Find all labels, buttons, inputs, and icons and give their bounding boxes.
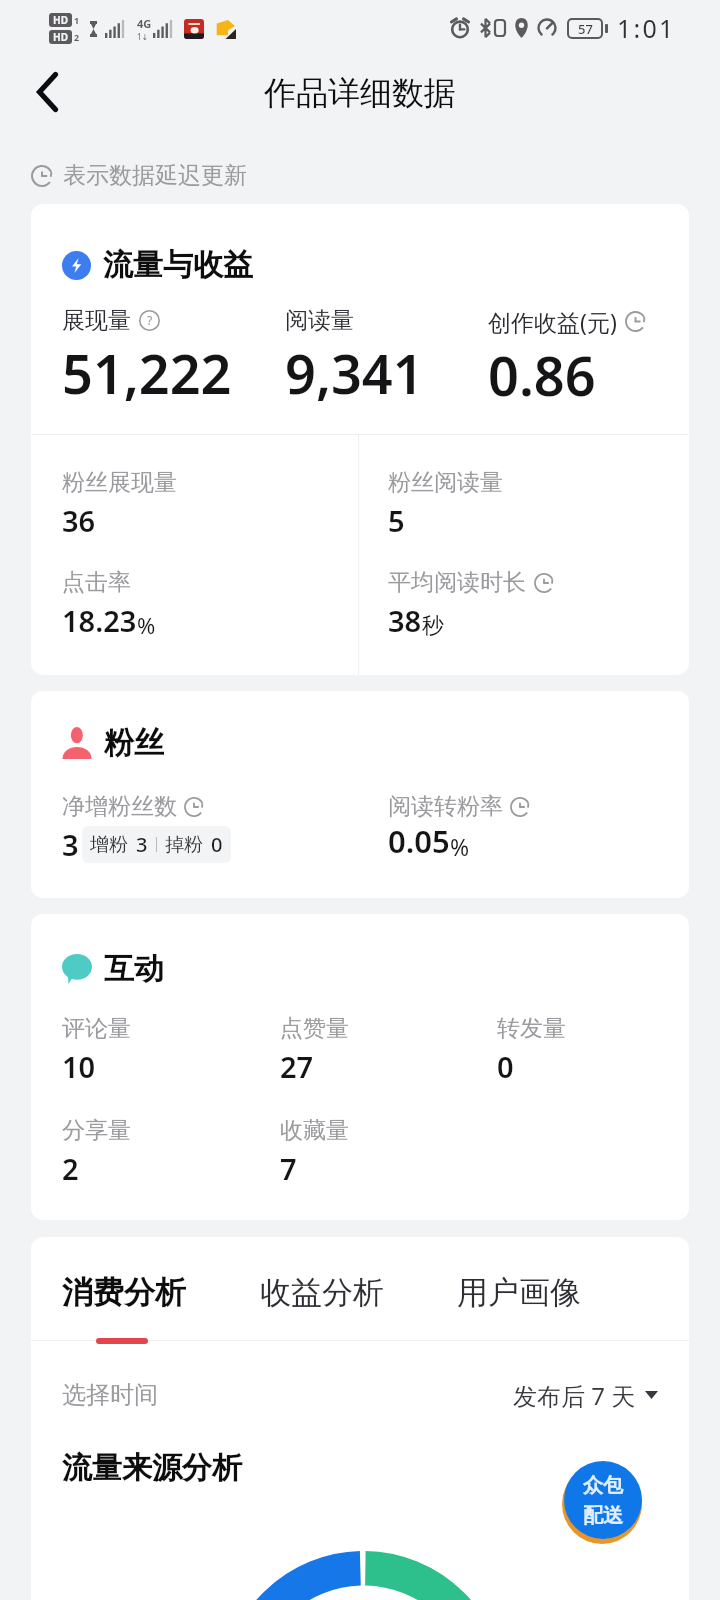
staticText: 消费分析 [62, 1273, 186, 1312]
staticText: 10 [62, 1047, 96, 1086]
staticText: 5 [388, 501, 405, 540]
staticText: 2 [62, 1149, 79, 1188]
staticText: HD [53, 30, 68, 44]
staticText: 发布后 7 天 [513, 1379, 636, 1412]
staticText: 38 [388, 601, 422, 640]
button[interactable]: 收益分析 [260, 1273, 384, 1312]
staticText: 3 [62, 825, 79, 864]
staticText: HD [53, 13, 68, 27]
staticText: 粉丝展现量 [62, 468, 177, 497]
staticText: 增粉 [90, 833, 128, 857]
staticText: 展现量 [62, 306, 131, 335]
staticText: 掉粉 [165, 833, 203, 857]
staticText: 0.86 [488, 338, 596, 412]
staticText: 1:01 [617, 11, 676, 45]
staticText: 阅读量 [285, 306, 354, 335]
button[interactable]: 选择时间 [31, 1370, 689, 1420]
staticText: 互动 [104, 950, 164, 988]
staticText: 配送 [583, 1503, 623, 1528]
staticText: 秒 [422, 612, 444, 640]
staticText: 流量与收益 [103, 246, 253, 284]
staticText: 1 [74, 14, 80, 26]
staticText: 0.05 [388, 820, 450, 862]
staticText: 点赞量 [280, 1014, 349, 1043]
staticText: 作品详细数据 [264, 73, 456, 113]
staticText: 粉丝阅读量 [388, 468, 503, 497]
staticText: 平均阅读时长 [388, 568, 526, 597]
staticText: 收益分析 [260, 1273, 384, 1312]
staticText: 创作收益(元) [488, 306, 617, 337]
staticText: 51,222 [62, 336, 232, 410]
staticText: 0 [497, 1047, 514, 1086]
staticText: 4G [137, 16, 152, 31]
staticText: 评论量 [62, 1014, 131, 1043]
staticText: 1↓ [137, 31, 149, 42]
button[interactable]: 消费分析 [62, 1273, 186, 1312]
staticText: 27 [280, 1047, 314, 1086]
staticText: 流量来源分析 [62, 1449, 242, 1487]
staticText: 表示数据延迟更新 [63, 161, 247, 190]
staticText: 分享量 [62, 1116, 131, 1145]
button[interactable]: 用户画像 [457, 1273, 581, 1312]
staticText: 众包 [583, 1473, 623, 1498]
staticText: % [450, 831, 470, 862]
staticText: 57 [578, 20, 593, 37]
button[interactable]: Back [7, 52, 87, 132]
staticText: 36 [62, 501, 96, 540]
button[interactable]: 众包配送 [564, 1461, 642, 1539]
staticText: 净增粉丝数 [62, 792, 177, 821]
staticText: 用户画像 [457, 1273, 581, 1312]
staticText: 18.23 [62, 601, 137, 640]
staticText: 9,341 [285, 336, 424, 410]
staticText: ? [147, 312, 153, 329]
staticText: 选择时间 [62, 1380, 158, 1410]
staticText: 阅读转粉率 [388, 792, 503, 821]
staticText: 点击率 [62, 568, 131, 597]
staticText: 3 [136, 831, 148, 858]
staticText: 7 [280, 1149, 297, 1188]
staticText: 2 [74, 31, 80, 43]
staticText: % [137, 610, 156, 640]
staticText: 转发量 [497, 1014, 566, 1043]
staticText: 0 [211, 831, 223, 858]
staticText: 收藏量 [280, 1116, 349, 1145]
staticText: 粉丝 [104, 724, 164, 762]
